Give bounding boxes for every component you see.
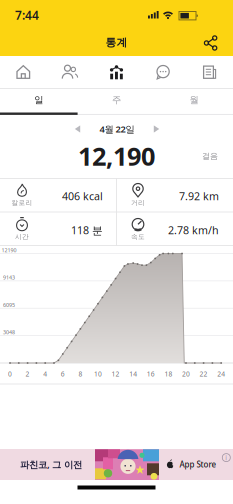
staticText: 월 — [190, 94, 199, 106]
staticText: 10 — [94, 370, 102, 378]
staticText: i — [225, 453, 227, 462]
staticText: 7.92 km — [179, 189, 219, 203]
staticText: 24 — [217, 370, 225, 378]
staticText: 3048 — [3, 329, 15, 336]
staticText: 파친코, 그 이전 — [20, 458, 82, 471]
staticText: 22 — [200, 370, 208, 378]
staticText: 시간 — [15, 233, 29, 241]
staticText: 118 분 — [71, 223, 103, 237]
staticText: 4월 22일 — [99, 123, 134, 135]
button[interactable]: 홈 — [5, 57, 41, 87]
staticText: App Store — [179, 459, 216, 470]
staticText: 20 — [182, 370, 190, 378]
staticText: 12,190 — [78, 139, 155, 173]
button[interactable]: 채팅 — [145, 57, 181, 87]
staticText: 7:44 — [15, 7, 39, 23]
staticText: 9143 — [3, 274, 15, 281]
staticText: 14 — [129, 370, 137, 378]
staticText: 2 — [26, 370, 30, 378]
button[interactable]: 뉴스 — [192, 57, 228, 87]
staticText: 16 — [147, 370, 155, 378]
button[interactable]: 주 — [78, 87, 155, 113]
button[interactable]: 이전 날짜 — [72, 122, 84, 136]
staticText: 12190 — [1, 247, 16, 254]
staticText: 일 — [34, 94, 43, 106]
staticText: 통계 — [105, 36, 127, 49]
staticText: 18 — [164, 370, 172, 378]
staticText: 걸음 — [202, 151, 218, 161]
staticText: 8 — [78, 370, 82, 378]
staticText: 6095 — [3, 301, 15, 308]
staticText: 4 — [43, 370, 47, 378]
button[interactable]: 일 — [0, 87, 78, 113]
staticText: 0 — [8, 370, 12, 378]
staticText: 주 — [112, 94, 121, 106]
button[interactable]: 공유 — [199, 31, 223, 55]
staticText: 칼로리 — [11, 199, 32, 207]
button[interactable]: 친구 — [52, 57, 88, 87]
button[interactable]: 월 — [155, 87, 233, 113]
staticText: 거리 — [131, 199, 145, 207]
staticText: 6 — [61, 370, 65, 378]
button[interactable]: 통계 — [98, 57, 134, 87]
button[interactable]: 다음 날짜 — [150, 122, 162, 136]
button[interactable]: 광고: 파친코, 그 이전 — App Store — [0, 449, 233, 480]
staticText: 속도 — [131, 233, 145, 241]
staticText: 2.78 km/h — [168, 223, 219, 237]
staticText: 406 kcal — [62, 189, 103, 203]
staticText: 12 — [112, 370, 120, 378]
